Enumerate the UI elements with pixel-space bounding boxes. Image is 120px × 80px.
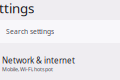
button[interactable]: Network & internet bbox=[0, 43, 120, 73]
staticText: Network & internet bbox=[2, 55, 75, 66]
button[interactable]: Search settings bbox=[0, 20, 120, 43]
staticText: Settings bbox=[0, 0, 34, 17]
staticText: Search settings bbox=[6, 27, 54, 36]
staticText: Mobile, Wi-Fi, hotspot bbox=[2, 66, 53, 73]
